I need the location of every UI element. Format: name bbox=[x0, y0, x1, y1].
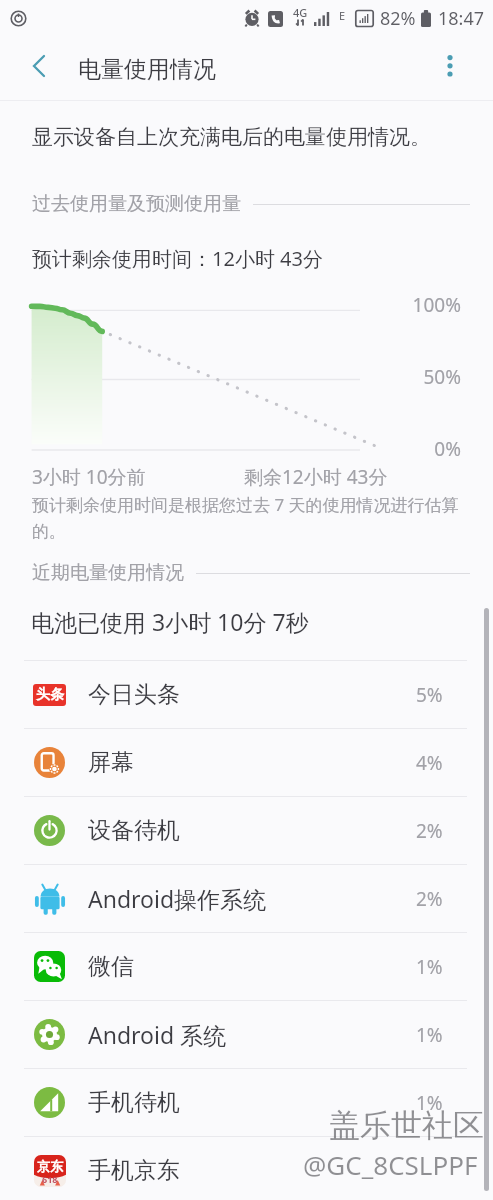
staticText: 手机京东 bbox=[88, 1156, 180, 1185]
staticText: 微信 bbox=[88, 952, 134, 981]
staticText: E bbox=[339, 8, 346, 23]
staticText: 预计剩余使用时间：12小时 43分 bbox=[32, 245, 323, 272]
staticText: 预计剩余使用时间是根据您过去 7 天的使用情况进行估算的。 bbox=[32, 493, 464, 542]
staticText: 18:47 bbox=[438, 6, 485, 31]
button[interactable]: More options bbox=[426, 34, 474, 98]
staticText: 1% bbox=[416, 1090, 443, 1116]
button[interactable]: 京东 bbox=[0, 1137, 493, 1200]
staticText: 4G bbox=[293, 5, 308, 20]
staticText: 电量使用情况 bbox=[78, 55, 216, 84]
staticText: 2% bbox=[416, 818, 443, 844]
staticText: 618 bbox=[42, 1173, 58, 1185]
staticText: 5% bbox=[416, 682, 443, 708]
staticText: 1% bbox=[416, 954, 443, 980]
staticText: 3小时 10分前 bbox=[32, 464, 146, 490]
button[interactable]: Back bbox=[15, 34, 63, 98]
button[interactable]: Android操作系统 bbox=[0, 865, 493, 932]
staticText: 屏幕 bbox=[88, 748, 134, 777]
button[interactable]: 头条 bbox=[0, 661, 493, 728]
button[interactable]: 设备待机 bbox=[0, 797, 493, 864]
staticText: Android操作系统 bbox=[88, 883, 267, 914]
staticText: 100% bbox=[412, 292, 461, 318]
button[interactable]: 微信 bbox=[0, 933, 493, 1000]
staticText: 今日头条 bbox=[88, 680, 180, 709]
staticText: 头条 bbox=[36, 686, 64, 704]
staticText: 电池已使用 3小时 10分 7秒 bbox=[31, 606, 309, 637]
staticText: 过去使用量及预测使用量 bbox=[32, 192, 241, 216]
staticText: 显示设备自上次充满电后的电量使用情况。 bbox=[32, 124, 431, 150]
staticText: @GC_8CSLPPF bbox=[303, 1147, 478, 1182]
staticText: 0% bbox=[434, 436, 461, 462]
staticText: 设备待机 bbox=[88, 816, 180, 845]
button[interactable]: 屏幕 bbox=[0, 729, 493, 796]
staticText: 近期电量使用情况 bbox=[32, 561, 184, 585]
staticText: 手机待机 bbox=[88, 1088, 180, 1117]
button[interactable]: 手机待机 bbox=[0, 1069, 493, 1136]
staticText: 82% bbox=[380, 6, 416, 31]
staticText: 盖乐世社区 bbox=[329, 1106, 484, 1145]
staticText: 2% bbox=[416, 886, 443, 912]
staticText: 50% bbox=[423, 364, 461, 390]
staticText: 1% bbox=[416, 1022, 443, 1048]
staticText: 京东 bbox=[37, 1158, 63, 1174]
staticText: 4% bbox=[416, 750, 443, 776]
staticText: 剩余12小时 43分 bbox=[244, 464, 388, 490]
button[interactable]: Android 系统 bbox=[0, 1001, 493, 1068]
staticText: Android 系统 bbox=[88, 1019, 227, 1050]
